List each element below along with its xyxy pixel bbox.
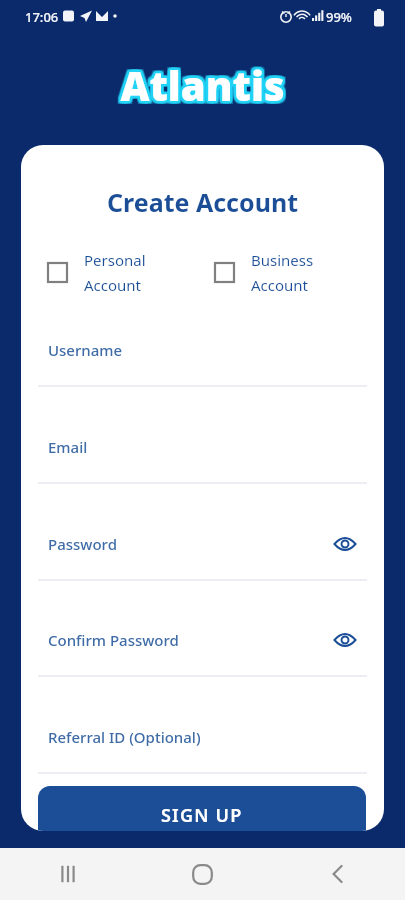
staticText: Atlantis <box>120 60 285 114</box>
staticText: Atlantis <box>118 56 283 110</box>
staticText: Atlantis <box>121 57 286 111</box>
button[interactable]: Confirm Password <box>21 616 384 712</box>
staticText: Atlantis <box>119 55 284 109</box>
staticText: Referral ID (Optional) <box>48 727 201 747</box>
staticText: Atlantis <box>117 55 282 109</box>
button[interactable]: Business <box>214 250 314 295</box>
staticText: Account <box>251 275 309 295</box>
button[interactable]: Show password <box>329 624 361 656</box>
staticText: Atlantis <box>121 59 286 113</box>
staticText: Atlantis <box>122 59 287 113</box>
staticText: Atlantis <box>118 57 283 111</box>
staticText: Personal <box>84 250 146 270</box>
button[interactable]: Back <box>270 848 405 900</box>
staticText: Atlantis <box>123 59 288 113</box>
staticText: Atlantis <box>122 58 287 112</box>
staticText: Email <box>48 437 88 457</box>
staticText: Atlantis <box>120 58 285 112</box>
staticText: Atlantis <box>121 58 286 112</box>
button[interactable]: Personal <box>47 250 146 295</box>
staticText: Atlantis <box>119 59 284 113</box>
button[interactable]: Referral ID (Optional) <box>21 713 384 809</box>
staticText: Atlantis <box>121 57 286 111</box>
button[interactable]: SIGN UP <box>38 786 366 831</box>
staticText: Atlantis <box>119 59 284 113</box>
staticText: 17:06 <box>25 8 59 26</box>
staticText: Atlantis <box>122 57 287 111</box>
staticText: Atlantis <box>123 61 288 115</box>
staticText: Atlantis <box>118 60 283 114</box>
staticText: Atlantis <box>119 57 284 111</box>
staticText: Atlantis <box>120 56 285 110</box>
staticText: Atlantis <box>123 57 288 111</box>
staticText: Atlantis <box>118 59 283 113</box>
button[interactable]: Show password <box>329 528 361 560</box>
staticText: Atlantis <box>119 56 284 110</box>
button[interactable]: Password <box>21 520 384 616</box>
staticText: Atlantis <box>119 61 284 115</box>
staticText: Atlantis <box>118 58 283 112</box>
staticText: Atlantis <box>123 55 288 109</box>
button[interactable]: Home <box>135 848 270 900</box>
button[interactable]: Email <box>21 423 384 519</box>
staticText: Atlantis <box>117 61 282 115</box>
staticText: Confirm Password <box>48 630 179 650</box>
staticText: Account <box>84 275 142 295</box>
staticText: Atlantis <box>122 60 287 114</box>
staticText: Atlantis <box>121 56 286 110</box>
staticText: Atlantis <box>121 61 286 115</box>
staticText: 99% <box>326 8 352 26</box>
staticText: Business <box>251 250 314 270</box>
staticText: Atlantis <box>117 59 282 113</box>
staticText: Atlantis <box>121 59 286 113</box>
staticText: Atlantis <box>121 55 286 109</box>
staticText: Atlantis <box>121 60 286 114</box>
button[interactable]: Recent apps <box>0 848 135 900</box>
button[interactable]: Username <box>21 326 384 422</box>
staticText: Atlantis <box>120 57 285 111</box>
staticText: Atlantis <box>119 57 284 111</box>
staticText: Atlantis <box>119 58 284 112</box>
staticText: SIGN UP <box>161 803 243 828</box>
staticText: Username <box>48 340 123 360</box>
staticText: Atlantis <box>120 59 285 113</box>
staticText: Create Account <box>107 185 298 219</box>
staticText: Atlantis <box>122 56 287 110</box>
staticText: Atlantis <box>119 60 284 114</box>
staticText: Atlantis <box>117 57 282 111</box>
staticText: Password <box>48 534 117 554</box>
